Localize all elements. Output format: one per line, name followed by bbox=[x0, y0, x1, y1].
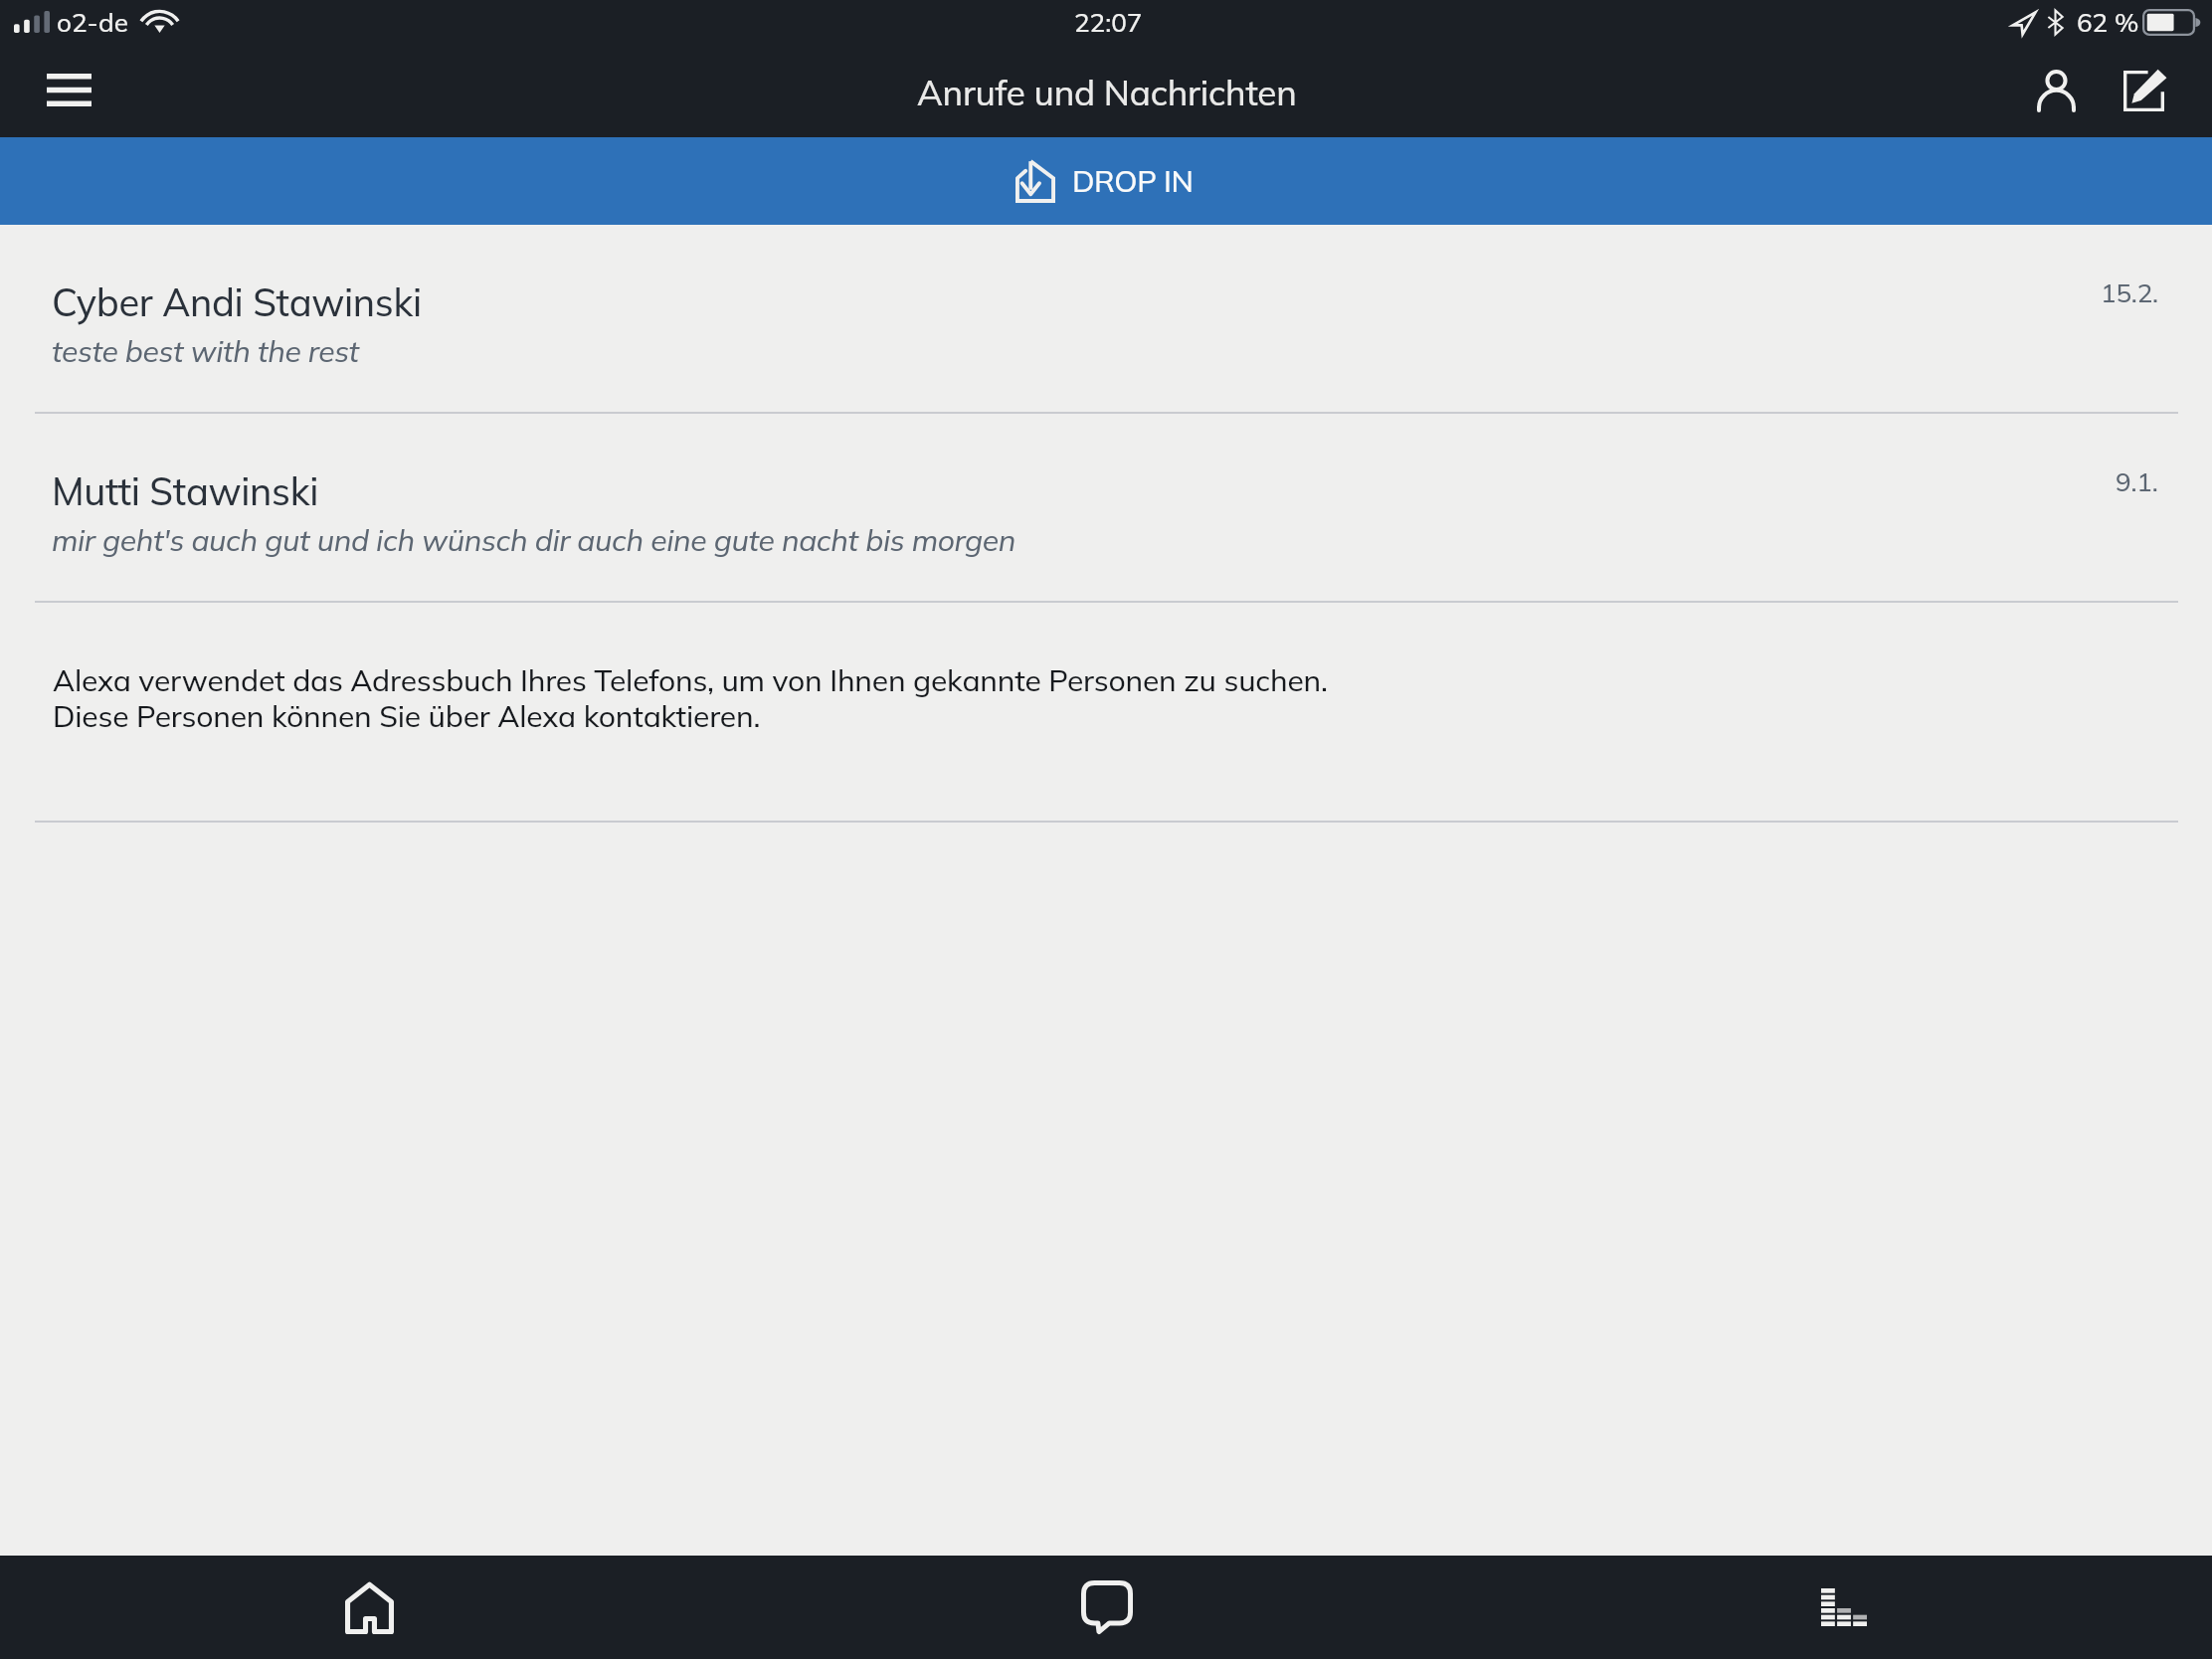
button[interactable]: Cyber Andi Stawinski bbox=[0, 225, 2212, 414]
staticText: mir geht's auch gut und ich wünsch dir a… bbox=[52, 521, 1015, 559]
button[interactable]: Open navigation menu bbox=[23, 52, 114, 127]
staticText: o2-de bbox=[57, 6, 128, 39]
button[interactable]: New message bbox=[2105, 52, 2182, 129]
staticText: Cyber Andi Stawinski bbox=[52, 278, 422, 326]
button[interactable]: Play bbox=[1475, 1556, 2212, 1659]
staticText: teste best with the rest bbox=[52, 332, 359, 370]
button[interactable]: Mutti Stawinski bbox=[0, 414, 2212, 603]
staticText: DROP IN bbox=[1072, 162, 1194, 200]
staticText: Anrufe und Nachrichten bbox=[917, 71, 1297, 114]
button[interactable]: Home bbox=[0, 1556, 738, 1659]
button[interactable]: Communicate bbox=[738, 1556, 1475, 1659]
staticText: Alexa verwendet das Adressbuch Ihres Tel… bbox=[53, 661, 1328, 699]
staticText: 9.1. bbox=[2116, 465, 2158, 498]
staticText: 62 % bbox=[2077, 6, 2139, 39]
button[interactable]: DROP IN bbox=[0, 137, 2212, 225]
staticText: Diese Personen können Sie über Alexa kon… bbox=[53, 697, 761, 735]
staticText: 15.2. bbox=[2101, 276, 2158, 309]
staticText: Mutti Stawinski bbox=[52, 467, 319, 515]
button[interactable]: Contacts bbox=[2017, 52, 2095, 129]
staticText: 22:07 bbox=[1074, 6, 1143, 39]
